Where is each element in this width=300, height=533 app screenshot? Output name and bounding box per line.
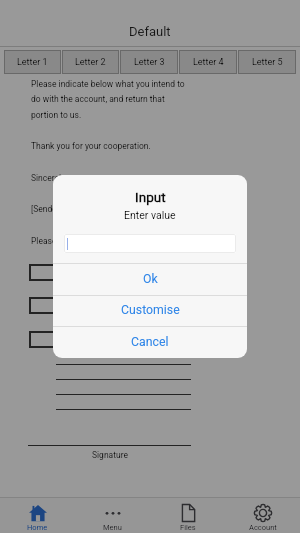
staticText: Home [27, 523, 48, 532]
button[interactable]: Letter 2 [62, 50, 119, 74]
staticText: Menu [103, 523, 122, 532]
staticText: Letter 4 [193, 57, 224, 68]
staticText: Letter 2 [75, 57, 106, 68]
staticText: Sincerely, [31, 173, 67, 183]
staticText: Files [180, 523, 196, 532]
staticText: Please indicate below what you intend to… [31, 79, 191, 120]
staticText: Please check one: [31, 236, 100, 246]
button[interactable]: Letter 4 [179, 50, 237, 74]
staticText: Letter 1 [17, 57, 48, 68]
button[interactable]: Menu [75, 500, 150, 532]
button[interactable]: Letter 3 [120, 50, 178, 74]
button[interactable]: Cancel [53, 326, 247, 357]
staticText: Input [135, 189, 166, 205]
staticText: Account [249, 523, 277, 532]
button[interactable]: Letter 5 [238, 50, 296, 74]
staticText: [Sender] [31, 204, 62, 214]
staticText: Default [129, 24, 171, 39]
staticText: Thank you for your cooperation. [31, 141, 151, 151]
button[interactable]: Customise [53, 294, 247, 325]
staticText: Customise [121, 303, 180, 317]
button[interactable]: Letter 1 [4, 50, 61, 74]
staticText: Letter 5 [252, 57, 283, 68]
button[interactable]: Account [225, 500, 300, 532]
button[interactable]: Ok [53, 263, 247, 294]
button[interactable]: Home [0, 500, 75, 532]
staticText: Signature [92, 450, 128, 460]
staticText: Enter value [124, 209, 176, 221]
button[interactable]: Files [150, 500, 225, 532]
staticText: Ok [143, 272, 158, 286]
staticText: Cancel [131, 335, 169, 349]
staticText: Letter 3 [134, 57, 165, 68]
